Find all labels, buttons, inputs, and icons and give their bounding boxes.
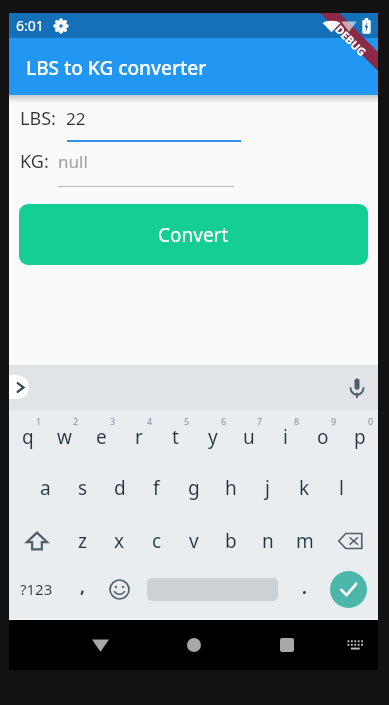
staticText: DEBUG [332,22,370,59]
staticText: x [114,528,125,554]
button[interactable]: n [249,515,286,567]
button[interactable]: q [9,410,46,462]
staticText: 9 [331,415,337,427]
staticText: 6 [221,415,227,427]
staticText: c [152,528,162,554]
staticText: v [189,528,199,554]
staticText: n [262,528,274,554]
button[interactable]: f [138,462,175,514]
staticText: a [40,475,51,501]
staticText: KG: [20,149,49,174]
button[interactable]: Backspace [323,515,378,567]
button[interactable]: Convert [19,204,368,265]
button[interactable]: Shift [9,515,64,567]
button[interactable]: e [83,410,120,462]
staticText: e [96,424,107,450]
staticText: 6:01 [16,16,44,35]
button[interactable]: Symbols [9,567,64,619]
button[interactable]: Emoji [101,567,138,619]
button[interactable]: d [101,462,138,514]
button[interactable]: c [138,515,175,567]
staticText: r [135,424,143,450]
staticText: m [296,528,314,554]
button[interactable]: Home [147,620,240,670]
staticText: b [225,528,237,554]
button[interactable]: o [304,410,341,462]
staticText: g [188,475,200,501]
button[interactable]: Back [54,620,147,670]
staticText: h [225,475,237,501]
staticText: LBS to KG converter [26,55,207,81]
button[interactable]: s [64,462,101,514]
staticText: p [354,424,366,450]
button[interactable]: r [120,410,157,462]
button[interactable]: Voice input [346,376,368,400]
button[interactable]: a [27,462,64,514]
staticText: . [302,576,307,599]
staticText: s [78,475,88,501]
button[interactable]: y [194,410,231,462]
button[interactable]: g [175,462,212,514]
button[interactable]: p [341,410,378,462]
button[interactable]: i [267,410,304,462]
staticText: d [114,475,126,501]
button[interactable]: Switch keyboard [333,620,378,670]
button[interactable]: l [323,462,360,514]
button[interactable]: w [46,410,83,462]
button[interactable]: x [101,515,138,567]
staticText: 2 [73,415,79,427]
staticText: Convert [158,222,229,248]
staticText: LBS: [20,106,56,131]
staticText: 22 [66,107,86,130]
button[interactable]: t [157,410,194,462]
staticText: f [153,475,160,501]
button[interactable]: h [212,462,249,514]
staticText: w [57,424,72,450]
staticText: l [339,475,344,501]
staticText: 7 [257,415,263,427]
staticText: j [265,475,270,501]
staticText: 4 [147,415,153,427]
staticText: k [299,475,310,501]
button[interactable]: Expand suggestions [9,375,29,399]
button[interactable]: k [286,462,323,514]
button[interactable]: Recents [240,620,333,670]
button[interactable]: Space [138,567,286,619]
staticText: 0 [368,415,374,427]
staticText: , [80,575,85,598]
button[interactable]: z [64,515,101,567]
button[interactable]: m [286,515,323,567]
staticText: null [58,150,88,173]
staticText: u [243,424,255,450]
staticText: ?123 [20,579,53,599]
button[interactable]: u [230,410,267,462]
button[interactable]: Period [286,567,323,619]
button[interactable]: Comma [64,567,101,619]
staticText: z [78,528,87,554]
button[interactable]: b [212,515,249,567]
staticText: i [283,424,288,450]
staticText: y [208,424,218,450]
staticText: t [172,424,179,450]
staticText: 3 [110,415,116,427]
staticText: q [22,424,34,450]
button[interactable]: Enter [323,567,378,619]
button[interactable]: v [175,515,212,567]
staticText: 1 [36,415,42,427]
button[interactable]: j [249,462,286,514]
staticText: 8 [294,415,300,427]
staticText: 5 [184,415,190,427]
staticText: o [317,424,329,450]
